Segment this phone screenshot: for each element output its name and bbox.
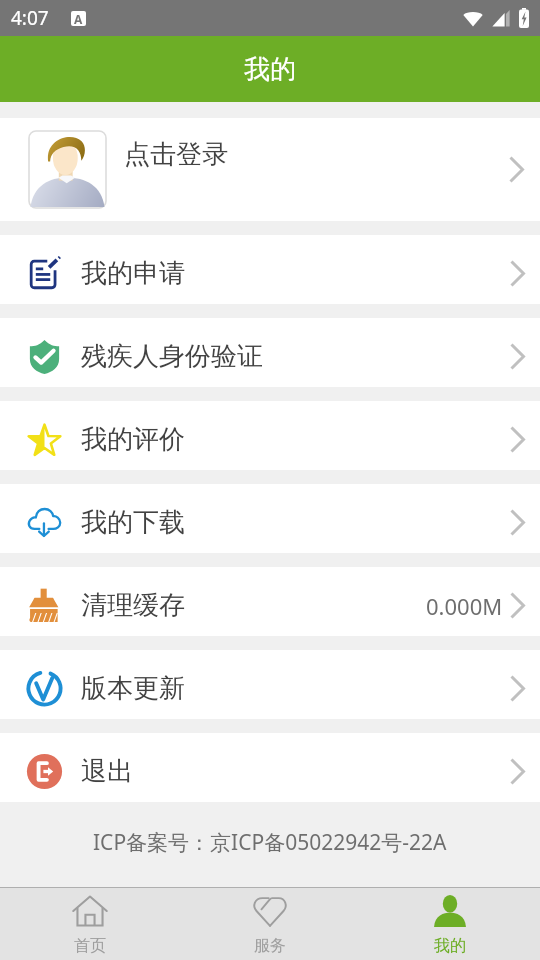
button[interactable]: 服务 xyxy=(180,888,360,960)
staticText: 点击登录 xyxy=(124,138,228,171)
button[interactable]: 我的评价 xyxy=(0,401,540,470)
staticText: 我的评价 xyxy=(81,423,185,456)
staticText: 0.000M xyxy=(426,591,503,621)
staticText: ICP备案号：京ICP备05022942号-22A xyxy=(93,828,447,857)
staticText: 清理缓存 xyxy=(81,589,185,622)
button[interactable]: 我的申请 xyxy=(0,235,540,304)
button[interactable]: 我的下载 xyxy=(0,484,540,553)
staticText: 我的 xyxy=(434,936,466,956)
staticText: 服务 xyxy=(254,936,286,956)
button[interactable]: 版本更新 xyxy=(0,650,540,719)
button[interactable]: 清理缓存 xyxy=(0,567,540,636)
staticText: 我的 xyxy=(244,53,296,86)
button[interactable]: 点击登录 xyxy=(0,118,540,221)
button[interactable]: 首页 xyxy=(0,888,180,960)
button[interactable]: 残疾人身份验证 xyxy=(0,318,540,387)
staticText: 版本更新 xyxy=(81,672,185,705)
staticText: 残疾人身份验证 xyxy=(81,340,263,373)
staticText: 首页 xyxy=(74,936,106,956)
staticText: 4:07 xyxy=(11,5,49,31)
button[interactable]: 退出 xyxy=(0,733,540,802)
staticText: A xyxy=(74,11,83,26)
staticText: 退出 xyxy=(81,755,133,788)
button[interactable]: 我的 xyxy=(360,888,540,960)
staticText: 我的申请 xyxy=(81,257,185,290)
staticText: 我的下载 xyxy=(81,506,185,539)
